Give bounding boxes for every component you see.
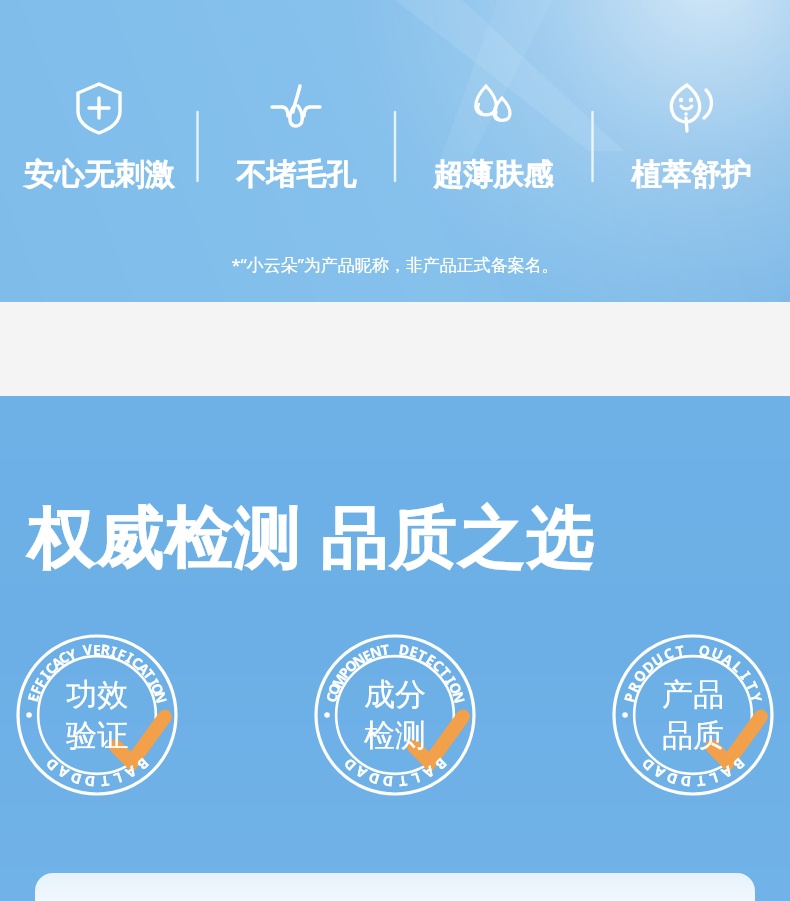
staticText: A [352,762,370,783]
staticText: D [398,639,411,660]
staticText: E [93,640,101,659]
button[interactable]: 不堵毛孔 [197,76,394,194]
staticText: A [54,762,72,783]
staticText: T [139,665,160,684]
staticText: T [695,772,706,791]
staticText: N [349,648,369,671]
staticText: C [321,691,342,704]
staticText: Q [697,640,713,661]
staticText: N [150,689,172,706]
staticText: T [99,772,110,791]
staticText: C [41,659,60,678]
staticText: P [619,691,640,704]
staticText: P [334,663,355,682]
staticText: 产品 [662,675,724,714]
staticText: N [448,689,470,706]
staticText: C [661,643,676,664]
button[interactable]: 超薄肤感 [394,76,592,194]
staticText: 验证 [66,716,128,755]
staticText: C [55,647,72,668]
staticText: D [638,656,659,677]
staticText: I [109,641,119,661]
staticText: 功效 [66,675,128,714]
staticText: Y [64,644,79,665]
staticText: I [123,648,137,667]
staticText: 不堵毛孔 [236,156,356,194]
staticText: E [422,649,439,670]
staticText: 权威检测 品质之选 [27,490,594,582]
staticText: 成分 [364,675,426,714]
staticText: V [82,639,94,659]
staticText: U [709,643,726,664]
staticText: I [737,667,755,683]
staticText: C [429,655,448,676]
staticText: L [707,768,721,789]
staticText: E [407,641,420,662]
staticText: *“小云朵”为产品昵称，非产品正式备案名。 [231,253,559,276]
other: 植萃舒护 [659,76,723,140]
staticText: T [414,645,431,666]
staticText: A [420,762,438,783]
staticText: I [144,675,164,690]
staticText: R [100,639,112,659]
staticText: D [365,768,382,789]
button[interactable]: E [12,630,182,800]
staticText: O [445,679,467,698]
staticText: E [359,645,375,666]
staticText: D [339,754,360,775]
staticText: 超薄肤感 [433,156,553,194]
staticText: R [623,678,645,695]
staticText: D [679,771,692,792]
staticText: O [340,654,362,677]
staticText: A [122,762,140,783]
staticText: U [648,648,667,670]
staticText: F [115,644,129,665]
staticText: T [742,678,763,695]
staticText: 植萃舒护 [631,156,751,194]
staticText: N [367,641,384,662]
staticText: D [637,754,658,775]
staticText: T [397,772,408,791]
staticText: O [323,679,345,698]
staticText: 检测 [364,716,426,755]
staticText: 安心无刺激 [24,156,174,194]
staticText: B [133,754,153,775]
staticText: D [83,771,96,792]
staticText: T [435,663,456,682]
staticText: F [26,682,46,697]
staticText: C [128,652,147,673]
button[interactable]: 安心无刺激 [0,76,197,194]
staticText: B [729,754,749,775]
staticText: B [431,754,451,775]
staticText: F [30,674,50,691]
staticText: A [134,658,154,679]
staticText: T [380,639,391,659]
staticText: D [67,768,84,789]
button[interactable] [35,873,755,901]
staticText: 品质 [662,716,724,755]
staticText: D [41,754,62,775]
staticText: E [23,691,43,704]
staticText: A [47,652,67,673]
staticText: O [629,665,651,686]
button[interactable]: C [310,630,480,800]
staticText: A [718,762,736,783]
staticText: A [650,762,668,783]
staticText: L [409,768,423,789]
staticText: A [719,649,737,670]
staticText: M [327,670,351,691]
staticText: D [381,771,394,792]
other: 不堵毛孔 [264,76,328,140]
other: 超薄肤感 [461,76,525,140]
staticText: I [441,673,461,688]
button[interactable]: P [608,630,778,800]
staticText: Y [746,691,767,704]
other: 安心无刺激 [67,76,131,140]
staticText: D [663,768,680,789]
staticText: L [111,768,125,789]
button[interactable]: 植萃舒护 [592,76,790,194]
staticText: T [674,640,687,661]
staticText: L [729,657,747,676]
staticText: O [147,680,169,699]
staticText: I [36,666,54,683]
